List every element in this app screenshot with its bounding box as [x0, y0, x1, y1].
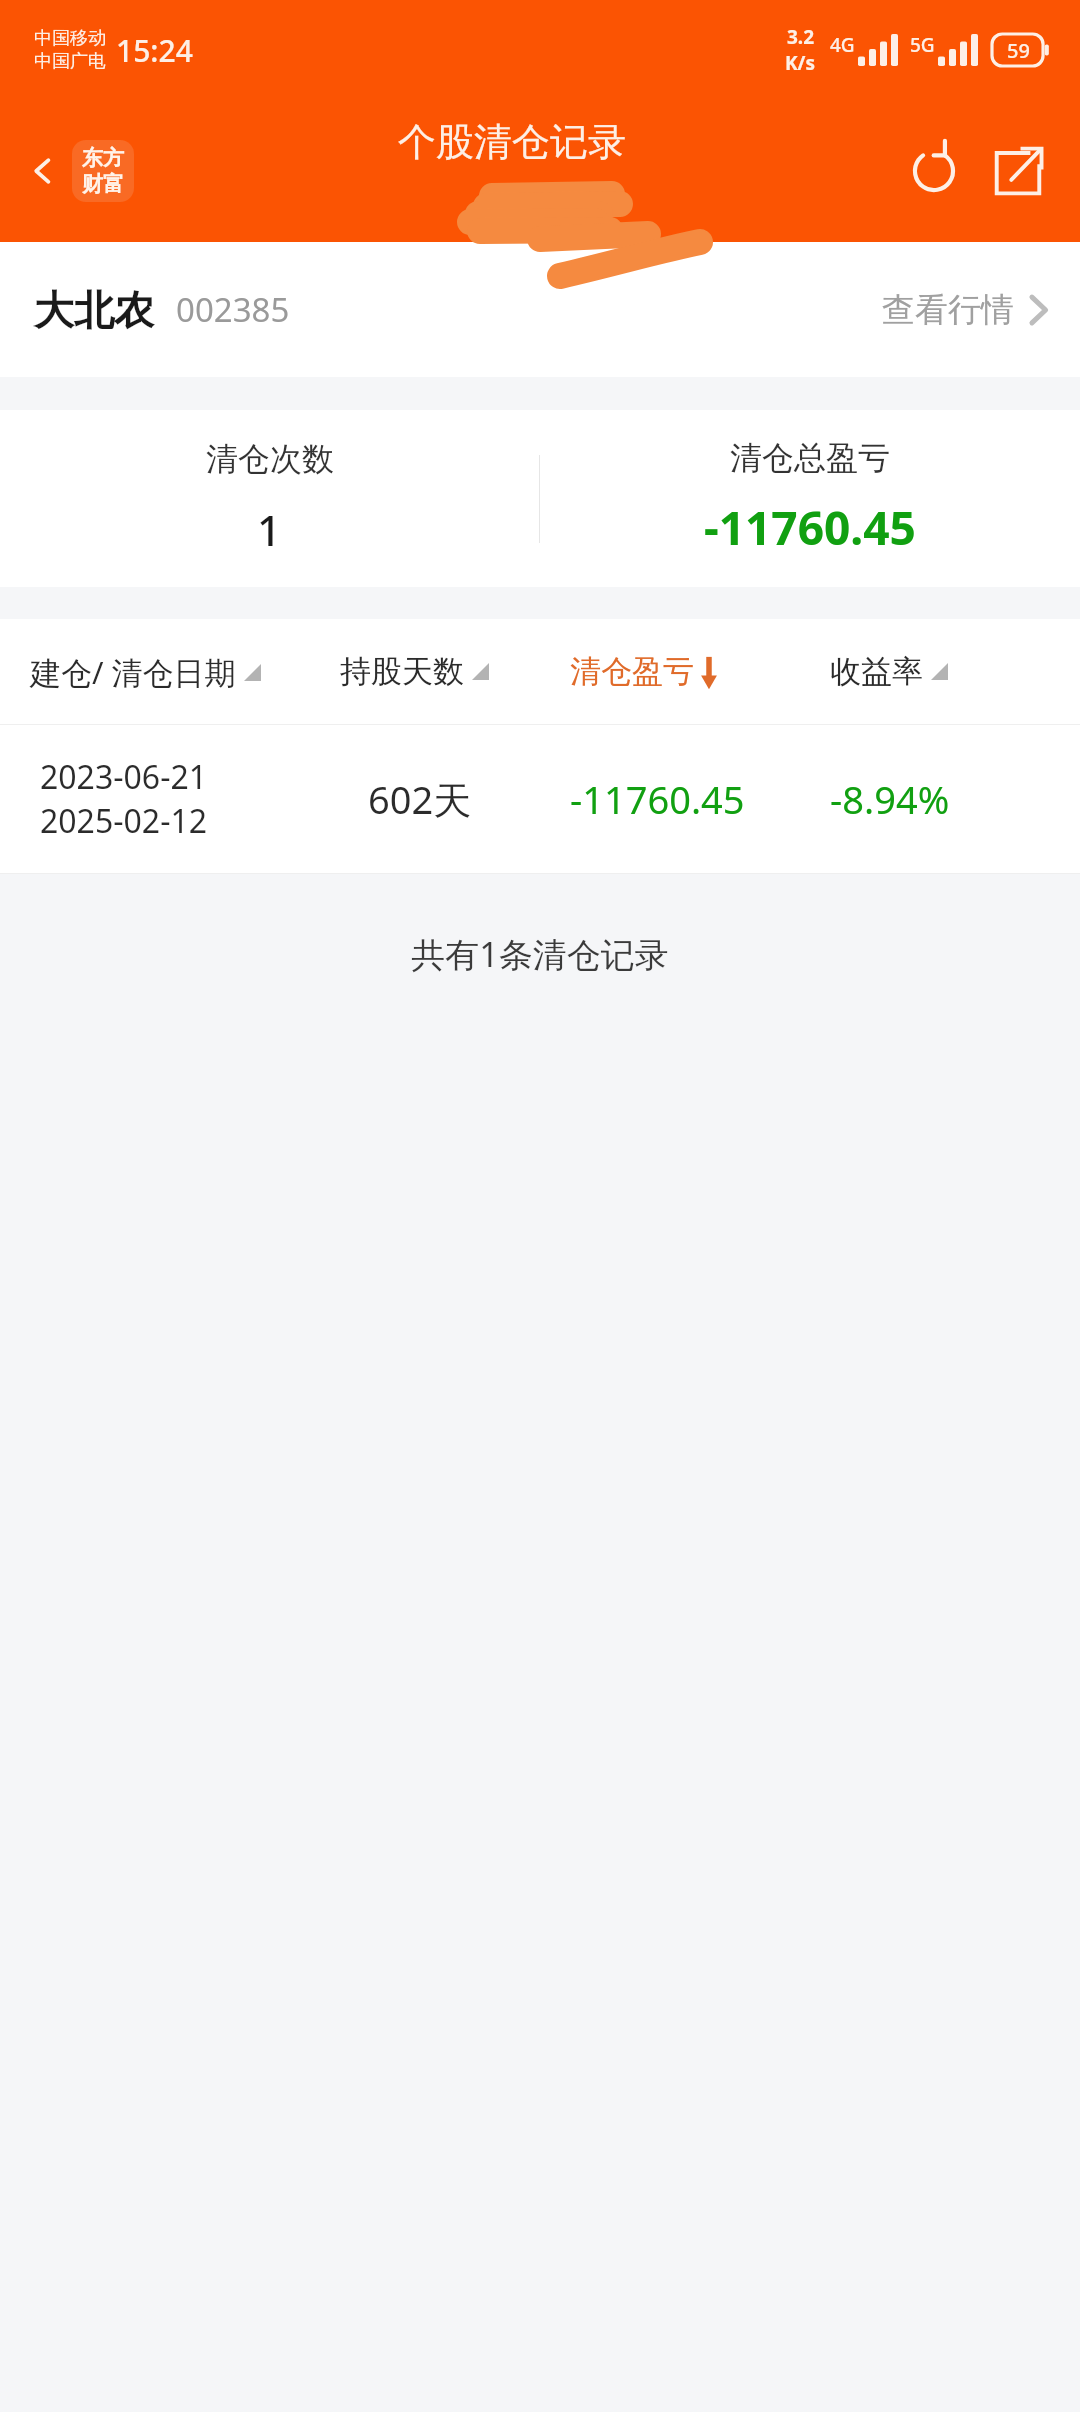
button[interactable]: 清仓盈亏 — [570, 652, 830, 691]
staticText: 59 — [1007, 37, 1030, 64]
staticText: 收益率 — [830, 652, 923, 691]
button[interactable]: 大北农 — [0, 242, 1080, 377]
button[interactable]: 建仓/ 清仓日期 — [30, 651, 340, 693]
staticText: 15:24 — [116, 30, 193, 71]
button[interactable]: 2023-06-21 — [0, 725, 1080, 873]
staticText: 共有1条清仓记录 — [411, 931, 669, 977]
staticText: 4G — [830, 32, 855, 58]
staticText: 财富 — [82, 171, 124, 197]
staticText: 5G — [910, 32, 935, 58]
staticText: -11760.45 — [570, 773, 745, 825]
staticText: -11760.45 — [704, 496, 916, 559]
staticText: 清仓总盈亏 — [730, 438, 890, 478]
staticText: 3.2 — [787, 24, 815, 50]
staticText: 2025-02-12 — [40, 799, 208, 843]
staticText: 中国移动 — [34, 27, 106, 50]
staticText: 2023-06-21 — [40, 755, 208, 799]
staticText: 602天 — [368, 773, 472, 825]
staticText: 个股清仓记录 — [398, 118, 626, 166]
button[interactable]: 收益率 — [830, 652, 1080, 691]
staticText: 持股天数 — [340, 652, 464, 691]
staticText: 大北农 — [34, 285, 154, 335]
staticText: 1 — [257, 501, 282, 558]
staticText: K/s — [785, 50, 816, 76]
staticText: 东方 — [82, 145, 124, 171]
staticText: 清仓盈亏 — [570, 652, 694, 691]
button[interactable]: 持股天数 — [340, 652, 570, 691]
staticText: -8.94% — [830, 773, 950, 825]
staticText: 002385 — [176, 287, 290, 332]
staticText: 清仓次数 — [206, 439, 334, 479]
staticText: 建仓/ 清仓日期 — [30, 651, 236, 693]
staticText: 中国广电 — [34, 50, 106, 73]
button[interactable]: 刷新 — [898, 135, 970, 207]
button[interactable]: 分享 — [982, 135, 1054, 207]
button[interactable]: 返回 东方财富 — [16, 130, 144, 212]
staticText: 查看行情 — [882, 289, 1014, 331]
